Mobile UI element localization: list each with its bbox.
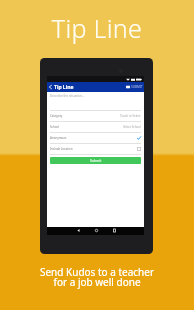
button[interactable]: Submit <box>50 157 141 164</box>
staticText: Select School <box>123 125 141 129</box>
button[interactable]: Back <box>69 227 87 235</box>
staticText: Send Kudos to a teacher for a job well d… <box>0 265 194 289</box>
staticText: Touch to Select <box>120 114 141 118</box>
staticText: Anonymous <box>50 136 67 140</box>
staticText: Describe the situation... <box>50 94 85 98</box>
button[interactable]: Include Location <box>47 144 144 155</box>
staticText: School <box>50 125 60 129</box>
button[interactable]: Category <box>47 111 144 122</box>
staticText: Submit <box>90 158 102 163</box>
staticText: Tip Line <box>0 11 194 45</box>
button[interactable]: SUBMIT <box>126 82 144 92</box>
button[interactable]: School <box>47 122 144 133</box>
button[interactable]: Home <box>87 227 105 235</box>
staticText: Category <box>50 114 63 118</box>
button[interactable]: Recents <box>105 227 123 235</box>
staticText: SUBMIT <box>131 85 143 89</box>
button[interactable]: Anonymous <box>47 133 144 144</box>
staticText: Tip Line <box>54 84 74 91</box>
button[interactable]: Back <box>47 82 54 92</box>
staticText: Include Location <box>50 147 73 151</box>
